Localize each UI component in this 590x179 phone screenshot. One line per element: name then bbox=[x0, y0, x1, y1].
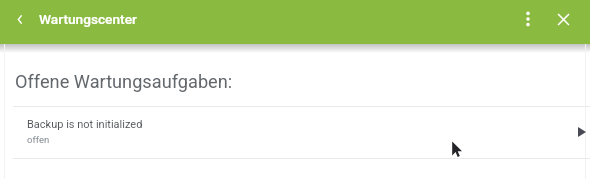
staticText: Offene Wartungsaufgaben: bbox=[15, 71, 233, 92]
button[interactable]: More options bbox=[511, 4, 544, 34]
button[interactable]: Back bbox=[6, 6, 32, 32]
staticText: offen bbox=[27, 134, 50, 145]
staticText: Backup is not initialized bbox=[27, 118, 143, 131]
staticText: Wartungscenter bbox=[39, 11, 137, 27]
button[interactable]: Backup is not initialized bbox=[0, 107, 590, 158]
button[interactable]: Close bbox=[548, 4, 579, 34]
